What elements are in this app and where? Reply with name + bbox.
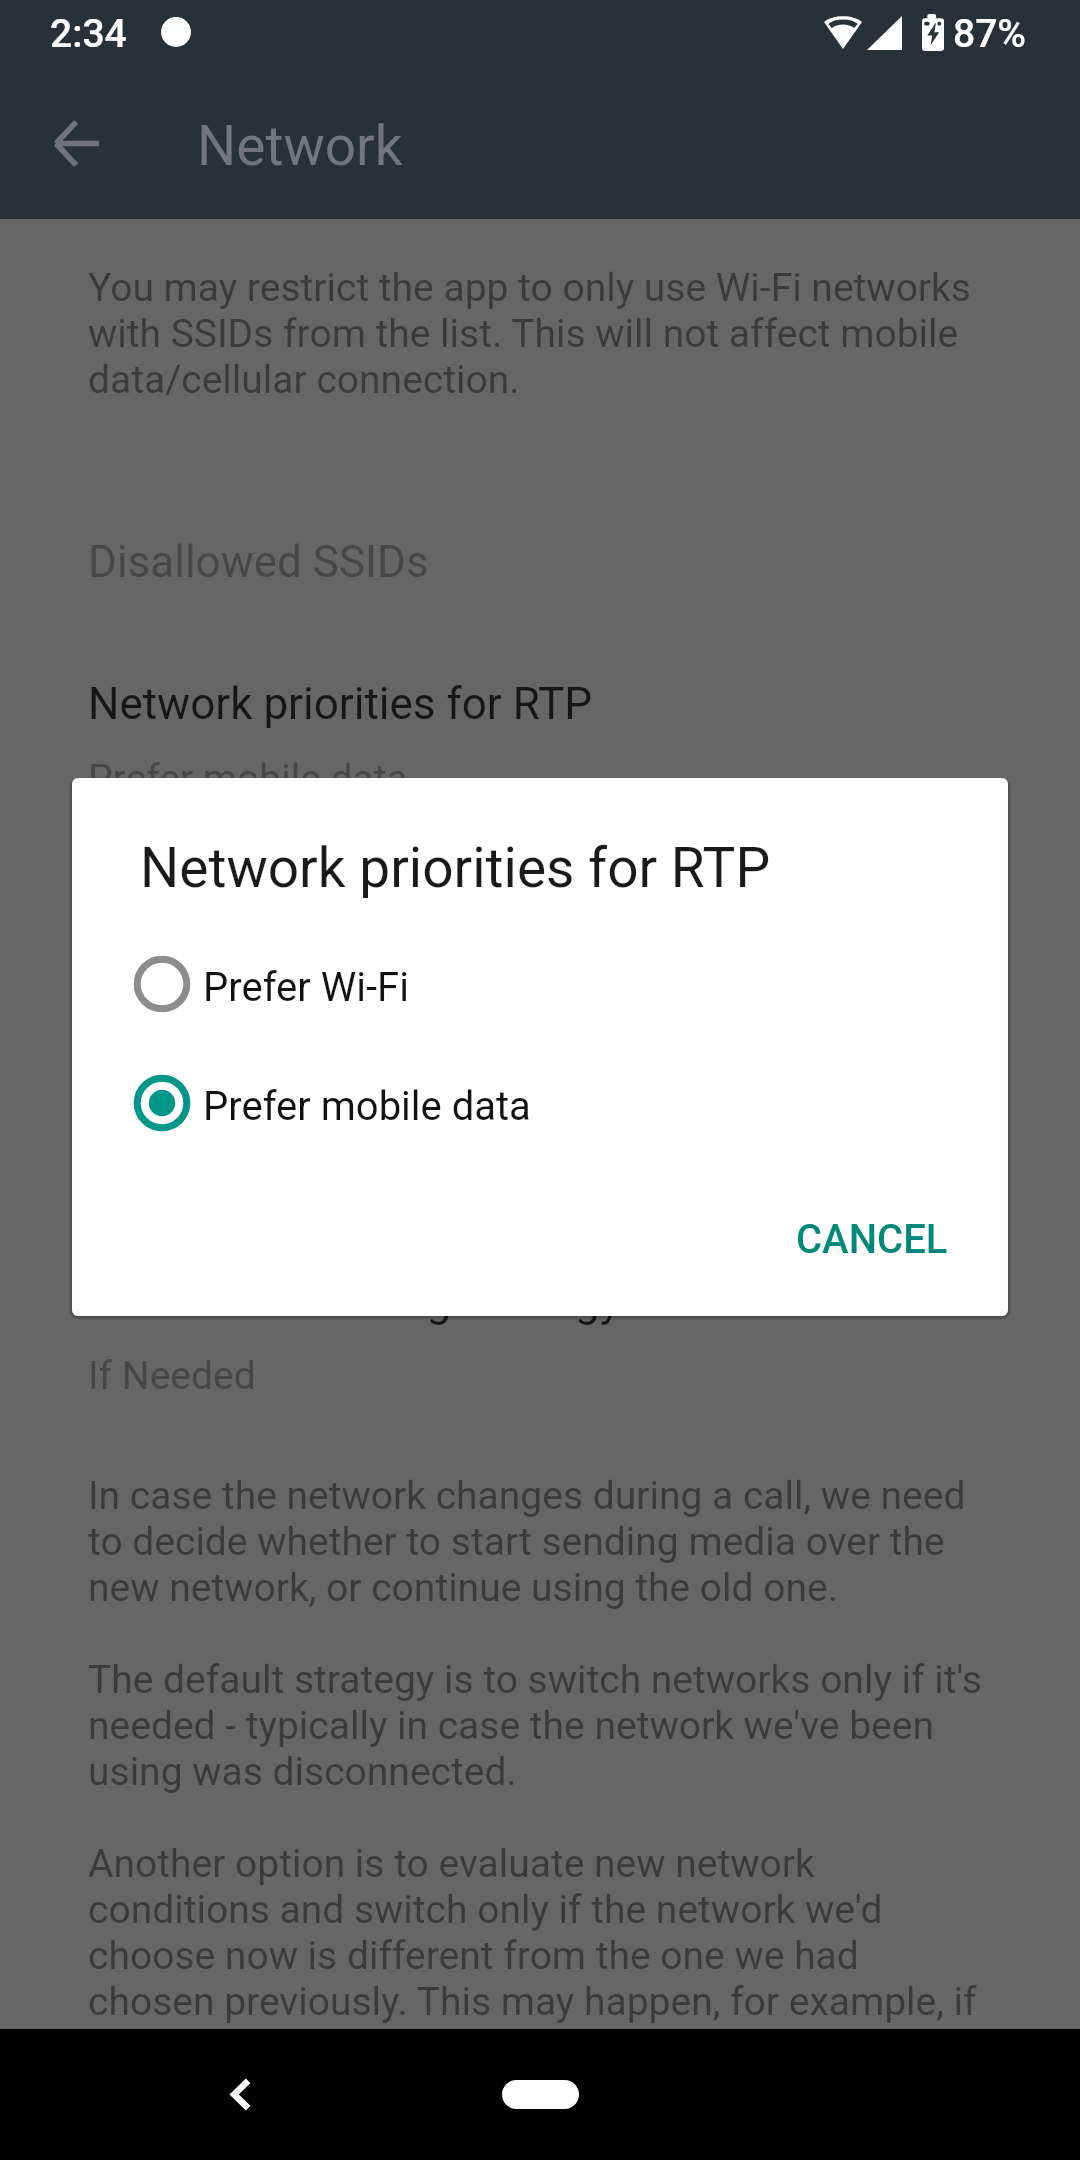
staticText: 87%: [953, 11, 1027, 57]
staticText: Network switching strategy: [88, 1275, 621, 1327]
staticText: CANCEL: [796, 1216, 948, 1263]
staticText: 2:34: [50, 11, 127, 57]
staticText: Prefer mobile data: [203, 1083, 531, 1130]
button[interactable]: Prefer mobile data: [72, 1043, 1008, 1162]
button[interactable]: Prefer Wi-Fi: [72, 924, 1008, 1043]
staticText: Prefer Wi-Fi: [203, 964, 409, 1011]
button[interactable]: Back: [178, 2029, 302, 2160]
staticText: You may restrict the app to only use Wi-…: [88, 265, 988, 403]
button[interactable]: Home: [502, 2080, 579, 2109]
staticText: Prefer mobile data: [88, 756, 408, 802]
staticText: Network: [197, 114, 403, 178]
staticText: Network priorities for RTP: [88, 678, 593, 730]
staticText: In case the network changes during a cal…: [88, 1473, 988, 2025]
button[interactable]: Navigate up: [11, 77, 143, 209]
button[interactable]: CANCEL: [777, 1197, 967, 1281]
staticText: Network priorities for RTP: [140, 841, 771, 899]
staticText: Disallowed SSIDs: [88, 536, 429, 588]
staticText: If Needed: [88, 1353, 256, 1399]
